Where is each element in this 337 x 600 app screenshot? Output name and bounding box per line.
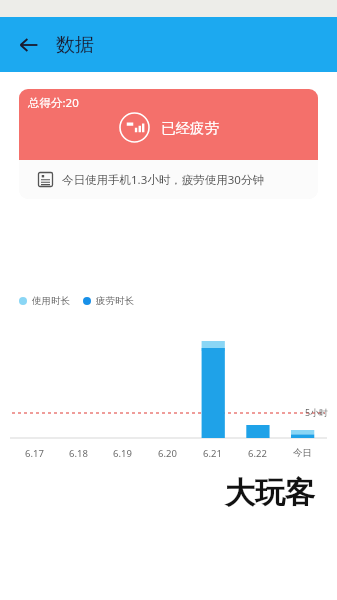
staticText: 今日使用手机1.3小时，疲劳使用30分钟 [62, 172, 264, 188]
staticText: 数据 [56, 33, 94, 57]
staticText: 6.17 [25, 447, 44, 460]
staticText: 6.19 [113, 447, 132, 460]
staticText: 疲劳时长 [96, 295, 134, 307]
staticText: 6.20 [158, 447, 177, 460]
staticText: 6.22 [248, 447, 267, 460]
button[interactable]: Back [12, 28, 46, 62]
staticText: 大玩客 [225, 474, 315, 512]
staticText: 已经疲劳 [161, 119, 219, 137]
staticText: 使用时长 [32, 295, 70, 307]
staticText: 总得分:20 [28, 95, 79, 111]
button[interactable]: 总得分:20 [19, 89, 318, 199]
staticText: 6.21 [203, 447, 222, 460]
staticText: 5小时 [305, 406, 329, 418]
staticText: 6.18 [69, 447, 88, 460]
staticText: 今日 [293, 447, 312, 459]
